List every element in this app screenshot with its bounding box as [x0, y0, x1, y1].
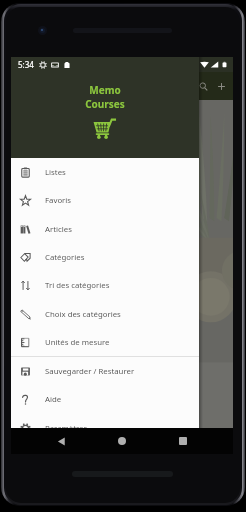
staticText: Catégories	[45, 252, 85, 263]
staticText: 5:34	[18, 59, 34, 70]
button[interactable]: Catégories	[11, 243, 199, 271]
button[interactable]: Tri des catégories	[11, 271, 199, 299]
button[interactable]: Add list	[212, 77, 230, 95]
button[interactable]: Home	[110, 429, 134, 453]
button[interactable]: Unités de mesure	[11, 328, 199, 356]
staticText: Memo	[89, 83, 121, 97]
staticText: Articles	[45, 224, 72, 235]
button[interactable]: Articles	[11, 215, 199, 243]
staticText: Listes	[45, 167, 66, 178]
staticText: Sauvegarder / Restaurer	[45, 366, 135, 377]
staticText: Unités de mesure	[45, 337, 110, 348]
button[interactable]: Back	[49, 429, 73, 453]
staticText: Tri des catégories	[45, 280, 110, 291]
button[interactable]: Aide	[11, 385, 199, 413]
staticText: Courses	[85, 97, 125, 111]
staticText: Choix des catégories	[45, 309, 121, 320]
button[interactable]: Paramètres	[11, 414, 199, 442]
staticText: Favoris	[45, 195, 72, 206]
button[interactable]: Recent apps	[171, 429, 195, 453]
button[interactable]: Listes	[11, 158, 199, 186]
button[interactable]: Sauvegarder / Restaurer	[11, 357, 199, 385]
button[interactable]: Choix des catégories	[11, 300, 199, 328]
button[interactable]: Search	[194, 77, 212, 95]
button[interactable]: Favoris	[11, 186, 199, 214]
staticText: Aide	[45, 394, 62, 405]
staticText: Paramètres	[45, 423, 88, 434]
